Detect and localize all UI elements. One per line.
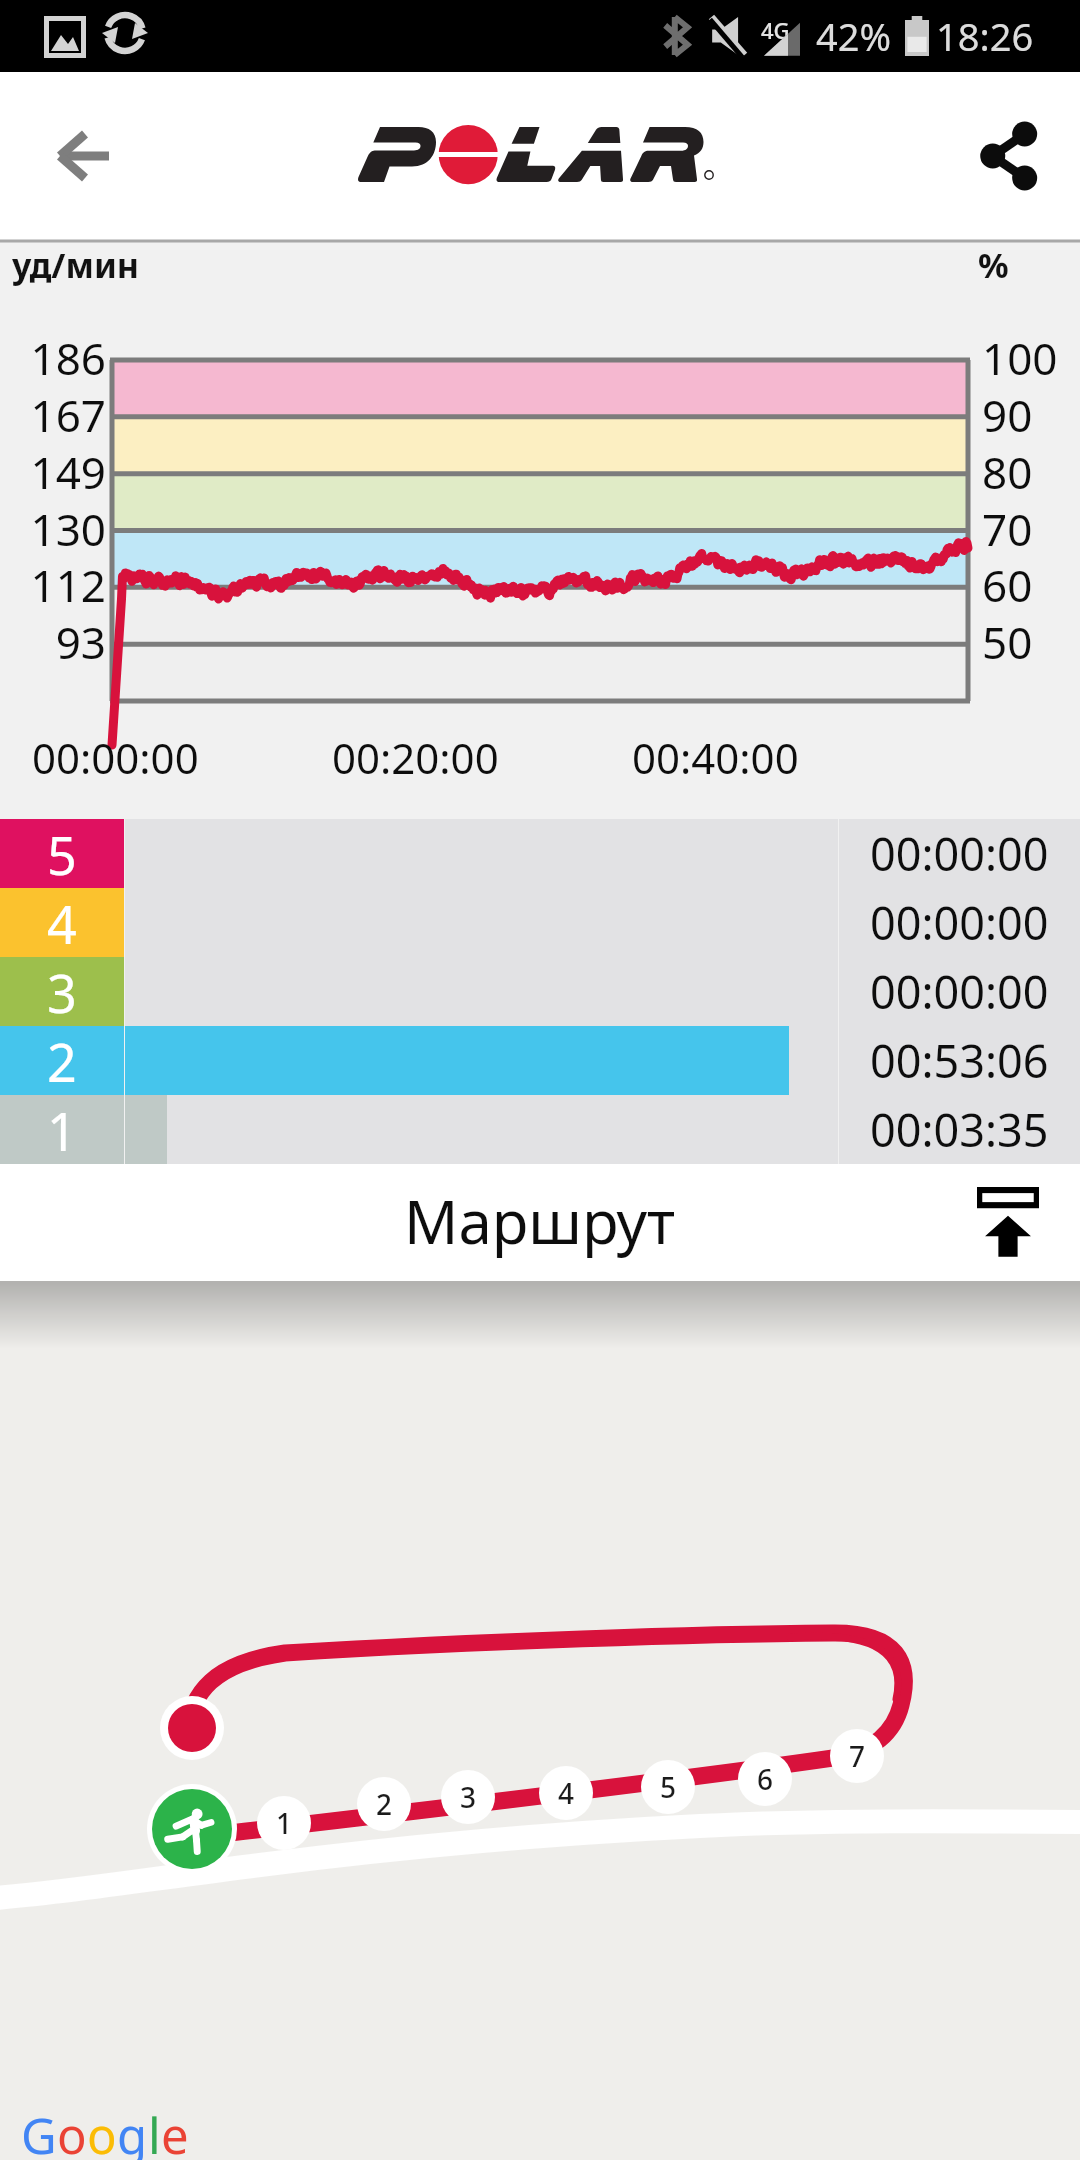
staticText: 112 (0, 555, 106, 615)
staticText: g (117, 2102, 148, 2160)
staticText: 4 (47, 888, 77, 957)
button[interactable]: 1 (0, 1095, 1080, 1164)
staticText: 5 (660, 1768, 677, 1806)
staticText: G (21, 2102, 57, 2160)
staticText: l (148, 2102, 161, 2160)
staticText: 130 (0, 499, 106, 559)
staticText: 4 (558, 1774, 575, 1812)
button[interactable]: 3 (0, 957, 1080, 1026)
staticText: 70 (982, 499, 1080, 559)
staticText: e (161, 2102, 189, 2160)
staticText: 2 (47, 1026, 77, 1095)
staticText: 3 (47, 957, 77, 1026)
staticText: 00:03:35 (870, 1099, 1049, 1160)
staticText: 7 (849, 1737, 866, 1775)
staticText: 00:40:00 (632, 729, 799, 786)
button[interactable]: Share (959, 108, 1055, 204)
button[interactable]: 4 (0, 888, 1080, 957)
staticText: 100 (982, 328, 1080, 388)
staticText: 60 (982, 555, 1080, 615)
staticText: уд/мин (12, 242, 140, 288)
staticText: 2 (376, 1785, 393, 1823)
staticText: 00:00:00 (870, 961, 1049, 1022)
staticText: 3 (460, 1778, 477, 1816)
staticText: 1 (276, 1804, 293, 1842)
staticText: 149 (0, 442, 106, 502)
staticText: 18:26 (936, 10, 1034, 62)
button[interactable]: Back (36, 108, 132, 204)
staticText: 00:00:00 (32, 729, 199, 786)
staticText: 93 (0, 612, 106, 672)
staticText: Маршрут (404, 1180, 676, 1262)
staticText: 00:00:00 (870, 823, 1049, 884)
staticText: o (57, 2102, 87, 2160)
staticText: 42% (816, 10, 892, 62)
staticText: % (978, 242, 1009, 288)
staticText: 80 (982, 442, 1080, 502)
staticText: 50 (982, 612, 1080, 672)
staticText: 1 (47, 1095, 77, 1164)
staticText: 00:20:00 (332, 729, 499, 786)
button[interactable]: 2 (0, 1026, 1080, 1095)
button[interactable]: Expand map (962, 1177, 1054, 1269)
staticText: 186 (0, 328, 106, 388)
staticText: 90 (982, 385, 1080, 445)
staticText: 6 (757, 1760, 774, 1798)
staticText: 4G (761, 15, 790, 45)
staticText: o (87, 2102, 117, 2160)
staticText: 00:53:06 (870, 1030, 1049, 1091)
staticText: 167 (0, 385, 106, 445)
staticText: 5 (47, 819, 77, 888)
button[interactable]: 5 (0, 819, 1080, 888)
staticText: 00:00:00 (870, 892, 1049, 953)
